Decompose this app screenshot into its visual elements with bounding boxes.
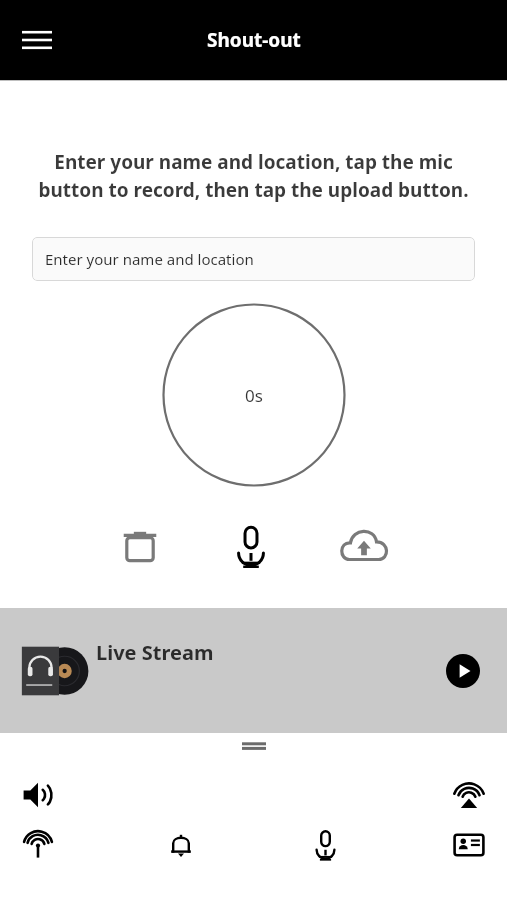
button[interactable]: Expand player [231,736,277,756]
staticText: Enter your name and location [45,249,254,269]
staticText: Shout-out [207,27,301,53]
button[interactable]: Live Stream [0,608,507,733]
button[interactable]: Volume [14,771,62,819]
button[interactable]: Delete recording [112,519,168,575]
button[interactable]: Notifications [157,821,205,869]
button[interactable]: Upload [334,517,394,577]
staticText: Enter your name and location, tap the mi… [36,149,471,203]
button[interactable]: Record [223,519,279,575]
button[interactable]: Cast [445,771,493,819]
staticText: 0s [245,384,263,407]
button[interactable]: Enter your name and location [32,237,475,281]
button[interactable]: Menu [10,13,64,67]
button[interactable]: Contact [445,821,493,869]
staticText: Live Stream [96,639,214,666]
button[interactable]: Recording timer [162,303,346,487]
button[interactable]: Broadcast [14,821,62,869]
button[interactable]: Microphone [301,821,349,869]
button[interactable]: Play [439,647,487,695]
